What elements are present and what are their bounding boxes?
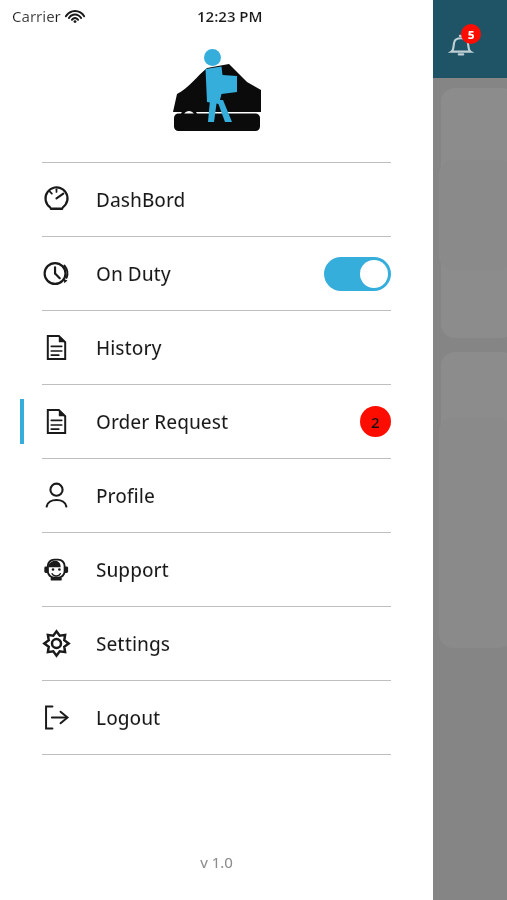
button[interactable]: Support [0, 533, 433, 606]
staticText: 5 [468, 27, 475, 42]
button[interactable] [324, 257, 391, 291]
staticText: Support [96, 557, 169, 583]
staticText: 2 [371, 412, 380, 432]
staticText: 12:23 PM [197, 6, 263, 26]
button[interactable]: Logout [0, 681, 433, 754]
staticText: On Duty [96, 261, 171, 287]
button[interactable]: Profile [0, 459, 433, 532]
staticText: Logout [96, 705, 161, 731]
staticText: DashBord [96, 187, 186, 213]
staticText: History [96, 335, 162, 361]
staticText: Carrier [12, 6, 61, 26]
staticText: v 1.0 [0, 852, 433, 872]
staticText: Order Request [96, 409, 229, 435]
button[interactable]: Settings [0, 607, 433, 680]
button[interactable]: DashBord [0, 163, 433, 236]
staticText: Settings [96, 631, 170, 657]
button[interactable]: History [0, 311, 433, 384]
button[interactable]: On Duty [0, 237, 433, 310]
staticText: Profile [96, 483, 155, 509]
other: Notifications [447, 32, 475, 60]
button[interactable]: Order Request [0, 385, 433, 458]
